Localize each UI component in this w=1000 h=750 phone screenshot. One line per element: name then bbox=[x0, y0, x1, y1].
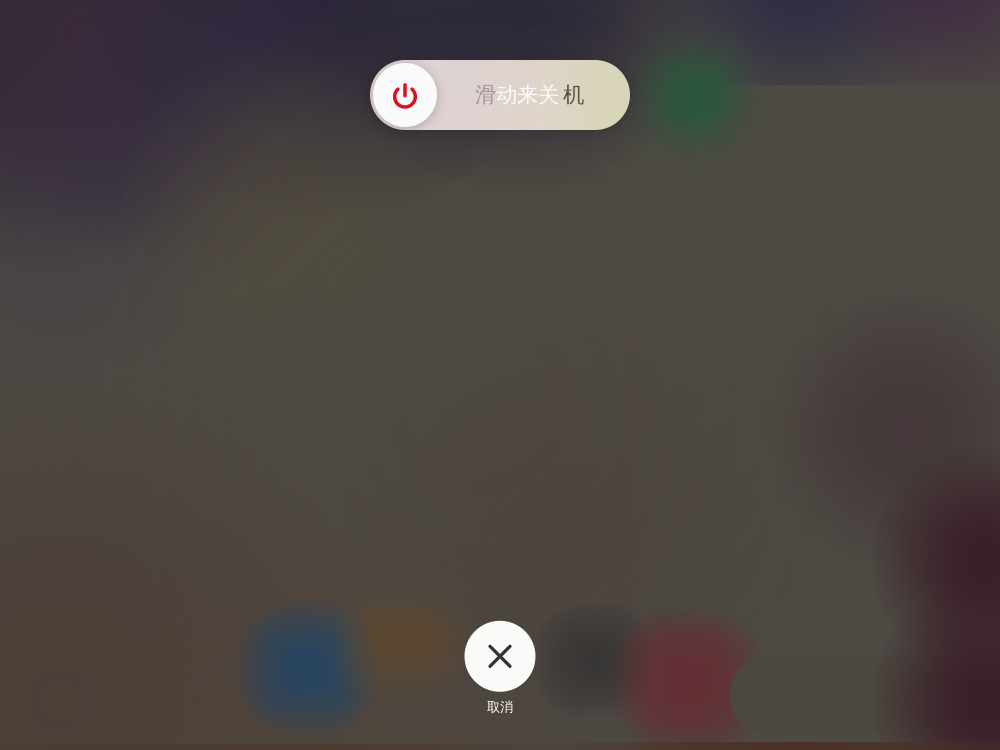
staticText: 机 bbox=[563, 82, 584, 108]
button[interactable]: 滑 bbox=[370, 60, 630, 130]
button[interactable]: 取消 bbox=[464, 621, 535, 715]
staticText: 动 bbox=[496, 82, 517, 108]
staticText: 关 bbox=[538, 82, 559, 108]
staticText: 取消 bbox=[487, 699, 513, 715]
staticText: 来 bbox=[517, 82, 538, 108]
staticText: 滑 bbox=[475, 82, 496, 108]
